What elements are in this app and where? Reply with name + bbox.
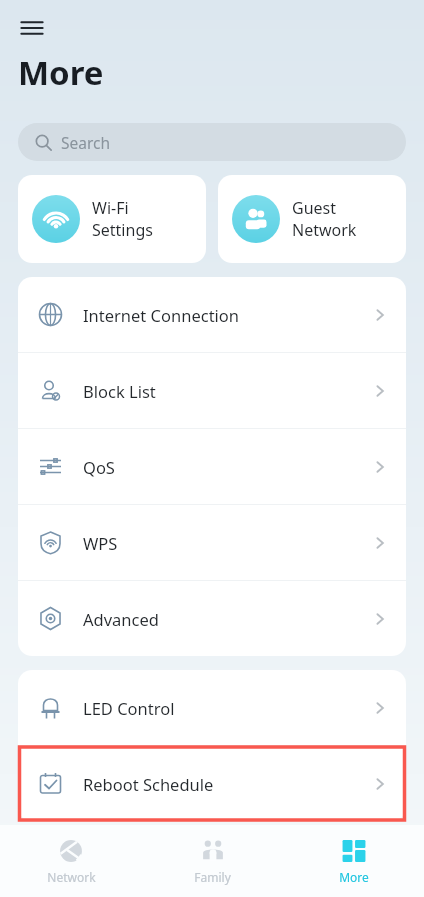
button[interactable]: Advanced xyxy=(18,581,406,656)
button[interactable]: WPS xyxy=(18,505,406,580)
button[interactable]: Family xyxy=(142,825,283,897)
staticText: Network xyxy=(292,219,357,241)
staticText: Internet Connection xyxy=(83,304,372,326)
button[interactable]: Guest xyxy=(218,175,406,263)
button[interactable]: QoS xyxy=(18,429,406,504)
staticText: Block List xyxy=(83,380,372,402)
staticText: More xyxy=(339,869,369,885)
button[interactable]: Reboot Schedule xyxy=(18,746,406,821)
staticText: More xyxy=(18,50,104,95)
button[interactable]: Network xyxy=(0,825,142,897)
staticText: QoS xyxy=(83,456,372,478)
button[interactable]: Search xyxy=(18,123,406,161)
button[interactable]: Wi-Fi xyxy=(18,175,206,263)
button[interactable]: Block List xyxy=(18,353,406,428)
button[interactable]: LED Control xyxy=(18,670,406,745)
staticText: Guest xyxy=(292,197,337,219)
button[interactable]: Menu xyxy=(12,8,52,48)
staticText: WPS xyxy=(83,532,372,554)
staticText: LED Control xyxy=(83,697,372,719)
button[interactable]: Internet Connection xyxy=(18,277,406,352)
staticText: Reboot Schedule xyxy=(83,773,372,795)
staticText: Family xyxy=(194,869,231,885)
staticText: Settings xyxy=(92,219,153,241)
staticText: Advanced xyxy=(83,608,372,630)
staticText: Wi-Fi xyxy=(92,197,129,219)
staticText: Network xyxy=(47,869,96,885)
button[interactable]: More xyxy=(283,825,424,897)
staticText: Search xyxy=(61,132,111,153)
